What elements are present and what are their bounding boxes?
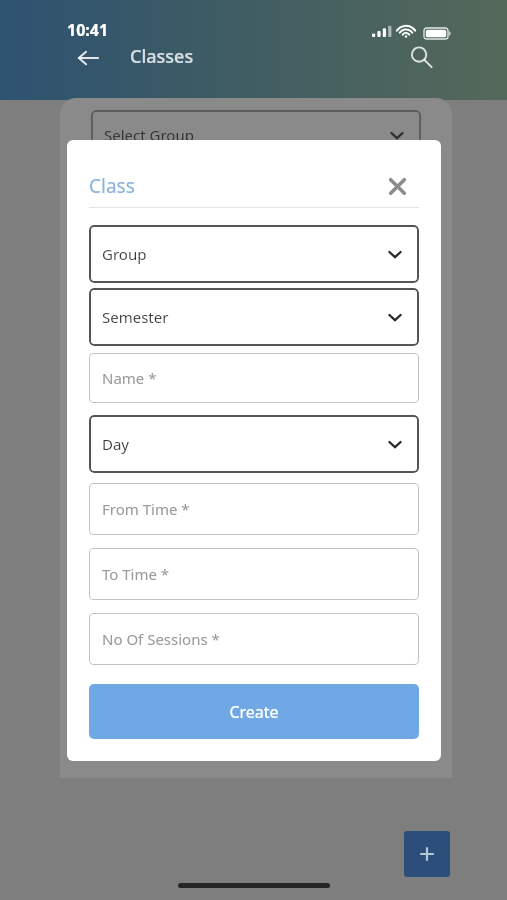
staticText: Semester [102,307,169,327]
staticText: Day [102,434,130,454]
button[interactable]: Search [400,36,442,78]
staticText: Create [229,701,279,723]
staticText: Class [89,173,135,199]
button[interactable]: Add class [404,831,450,877]
button[interactable]: From Time * [89,483,419,535]
button[interactable]: Group [89,225,419,283]
button[interactable]: Back [68,38,108,78]
button[interactable]: Create [89,684,419,739]
staticText: No Of Sessions * [102,629,220,649]
staticText: From Time * [102,499,190,519]
button[interactable]: Name * [89,353,419,403]
staticText: Classes [130,44,194,69]
staticText: Name * [102,368,157,388]
button[interactable]: To Time * [89,548,419,600]
button[interactable]: No Of Sessions * [89,613,419,665]
button[interactable]: Select Group [91,110,421,160]
staticText: Select Group [104,125,194,145]
button[interactable]: Day [89,415,419,473]
staticText: To Time * [102,564,170,584]
staticText: 10:41 [67,19,109,41]
staticText: Group [102,244,147,264]
button[interactable]: Semester [89,288,419,346]
button[interactable]: Close [375,164,419,208]
